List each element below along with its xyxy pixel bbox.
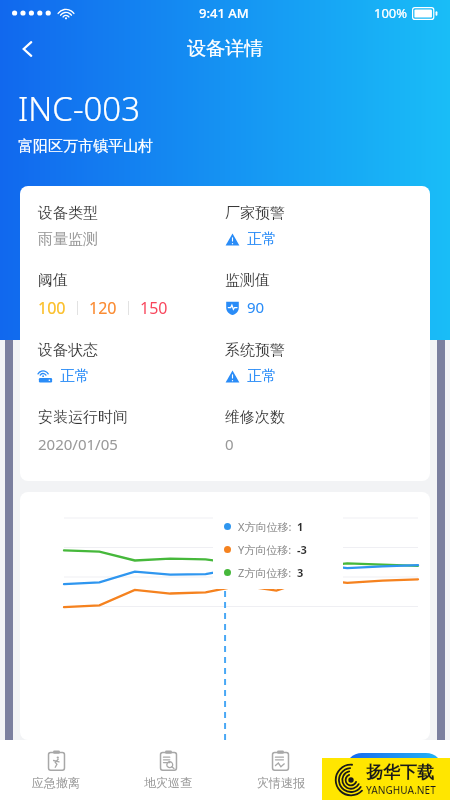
staticText: 系统预警 [225,341,285,360]
button[interactable]: 扬华下载 [345,753,443,787]
staticText: 3 [297,565,304,580]
staticText: 150 [140,297,168,319]
staticText: 正常 [247,230,277,249]
staticText: 维修次数 [225,408,285,427]
staticText: 应急撤离 [32,775,80,790]
staticText: Y方向位移: [238,542,292,557]
staticText: 100% [374,4,408,22]
staticText: -3 [297,542,307,557]
button[interactable]: 地灾巡查 [112,740,224,800]
staticText: 正常 [60,367,90,386]
staticText: 灾情速报 [257,775,305,790]
staticText: 1 [297,519,304,534]
staticText: Z方向位移: [238,565,292,580]
staticText: 地灾巡查 [144,775,192,790]
staticText: X方向位移: [238,519,292,534]
staticText: 2020/01/05 [38,434,118,454]
staticText: 监测值 [225,271,270,290]
staticText: 90 [247,297,265,317]
staticText: 扬华下载 [366,762,434,783]
staticText: 安装运行时间 [38,408,128,427]
staticText: YANGHUA.NET [366,783,436,797]
staticText: 设备状态 [38,341,98,360]
button[interactable]: Back [6,27,50,71]
staticText: 正常 [247,367,277,386]
staticText: 阈值 [38,271,68,290]
staticText: 厂家预警 [225,204,285,223]
staticText: INC-003 [18,86,141,131]
button[interactable]: 灾情速报 [224,740,337,800]
staticText: 100 [38,297,66,319]
staticText: 扬华下载 [366,761,422,779]
staticText: 设备类型 [38,204,98,223]
button[interactable]: 应急撤离 [0,740,112,800]
staticText: 0 [225,434,234,454]
staticText: 9:41 AM [199,4,249,22]
staticText: 雨量监测 [38,230,98,249]
staticText: 富阳区万市镇平山村 [18,137,153,156]
staticText: 设备详情 [187,37,263,61]
staticText: 120 [89,297,117,319]
